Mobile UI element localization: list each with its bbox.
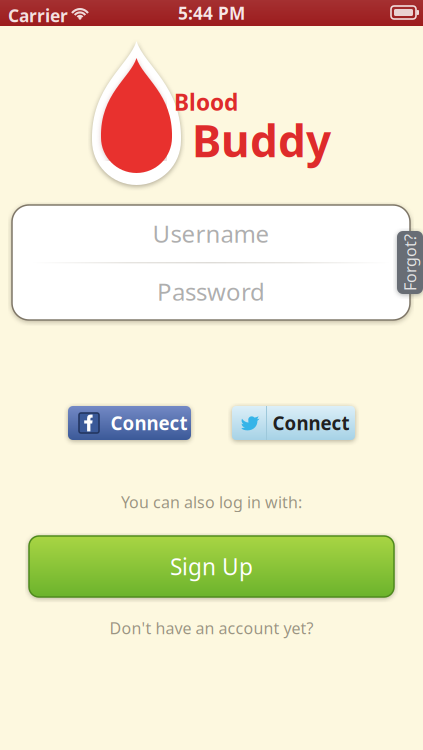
staticText: Sign Up <box>170 551 253 581</box>
button[interactable]: Don't have an account yet? <box>0 618 423 638</box>
button[interactable]: Password <box>12 263 410 320</box>
button[interactable]: Connect <box>232 406 355 440</box>
staticText: Blood <box>174 87 238 117</box>
button[interactable]: Sign Up <box>29 536 394 597</box>
staticText: Connect <box>272 411 349 435</box>
staticText: You can also log in with: <box>121 491 302 513</box>
button[interactable]: Forgot? <box>397 231 423 294</box>
staticText: Username <box>152 218 269 249</box>
staticText: 5:44 PM <box>178 1 245 24</box>
staticText: Buddy <box>192 111 331 169</box>
staticText: Don't have an account yet? <box>109 617 313 639</box>
button[interactable]: Connect <box>68 406 191 440</box>
staticText: Forgot? <box>381 252 423 273</box>
button[interactable]: Username <box>12 205 410 262</box>
staticText: Connect <box>110 411 187 435</box>
staticText: Carrier <box>8 4 68 27</box>
staticText: Password <box>157 276 265 307</box>
